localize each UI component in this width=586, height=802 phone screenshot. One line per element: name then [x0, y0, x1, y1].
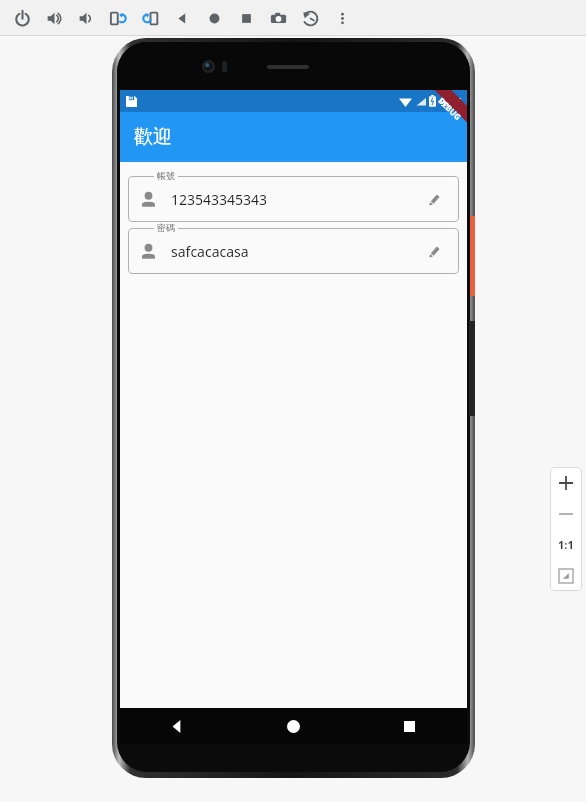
- button[interactable]: Volume up: [38, 3, 70, 33]
- button[interactable]: Edit: [421, 238, 447, 264]
- staticText: DEBUG: [436, 95, 464, 122]
- staticText: 9:16: [440, 94, 462, 109]
- button[interactable]: Volume down: [70, 3, 102, 33]
- button[interactable]: Edit: [421, 186, 447, 212]
- button[interactable]: More: [326, 3, 358, 33]
- button[interactable]: Rotate right: [134, 3, 166, 33]
- button[interactable]: Zoom in: [550, 467, 582, 498]
- button[interactable]: Actual size: [550, 529, 582, 560]
- staticText: 123543345343: [171, 190, 268, 209]
- staticText: 密碼: [157, 222, 175, 233]
- button[interactable]: Fit to window: [550, 560, 582, 591]
- staticText: safcacacasa: [171, 242, 249, 261]
- button[interactable]: History: [294, 3, 326, 33]
- button[interactable]: Back: [166, 3, 198, 33]
- button[interactable]: Recent apps: [351, 708, 467, 744]
- button[interactable]: 密碼: [128, 222, 459, 274]
- button[interactable]: Zoom out: [550, 498, 582, 529]
- button[interactable]: Home: [235, 708, 351, 744]
- button[interactable]: Overview: [230, 3, 262, 33]
- button[interactable]: Power: [6, 3, 38, 33]
- staticText: 歡迎: [134, 125, 172, 149]
- button[interactable]: Screenshot: [262, 3, 294, 33]
- button[interactable]: Home: [198, 3, 230, 33]
- staticText: 帳號: [157, 170, 175, 181]
- staticText: 1:1: [558, 537, 574, 552]
- button[interactable]: 帳號: [128, 170, 459, 222]
- button[interactable]: Rotate left: [102, 3, 134, 33]
- button[interactable]: Back: [120, 708, 235, 744]
